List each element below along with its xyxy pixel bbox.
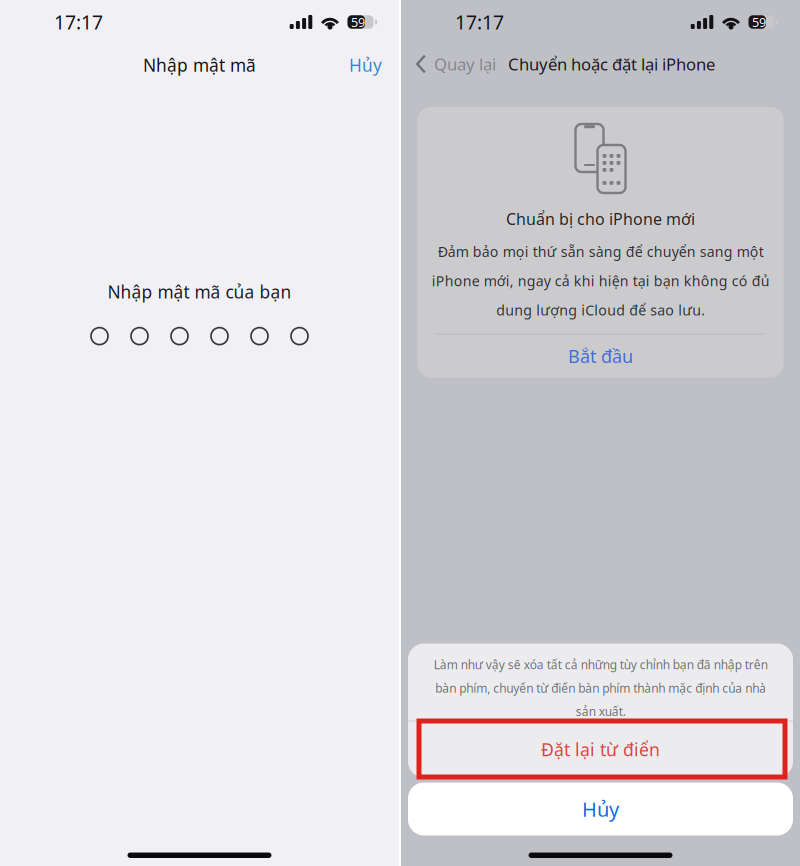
staticText: Chuẩn bị cho iPhone mới (506, 208, 695, 230)
staticText: Đảm bảo mọi thứ sẵn sàng để chuyển sang … (431, 242, 769, 319)
staticText: Bắt đầu (568, 344, 633, 368)
staticText: Làm như vậy sẽ xóa tất cả những tùy chỉn… (433, 656, 767, 719)
button[interactable]: Đặt lại từ điển (408, 721, 793, 777)
staticText: Chuyển hoặc đặt lại iPhone (508, 53, 715, 75)
staticText: Nhập mật mã của bạn (107, 280, 291, 304)
staticText: 59 (752, 13, 766, 31)
staticText: Đặt lại từ điển (541, 737, 660, 761)
button[interactable]: Hủy (408, 782, 793, 835)
staticText: 17:17 (54, 9, 103, 35)
staticText: Hủy (582, 795, 619, 823)
button[interactable]: Bắt đầu (417, 334, 783, 377)
staticText: Nhập mật mã (143, 53, 256, 77)
staticText: Quay lại (434, 53, 496, 75)
staticText: 59 (351, 13, 365, 31)
staticText: Hủy (349, 53, 382, 77)
staticText: 17:17 (455, 9, 504, 35)
button[interactable]: Hủy (341, 47, 390, 83)
button[interactable]: Quay lại (415, 49, 496, 79)
